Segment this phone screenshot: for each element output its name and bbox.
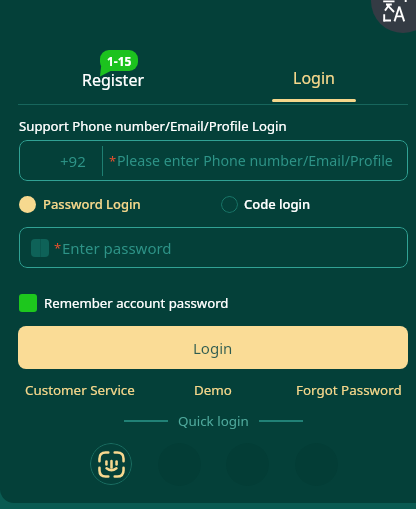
staticText: Remember account password <box>44 294 229 312</box>
staticText: Support Phone number/Email/Profile Login <box>19 117 287 135</box>
staticText: Please enter Phone number/Email/Profile <box>117 151 393 170</box>
staticText: Forgot Password <box>296 381 402 399</box>
staticText: Enter password <box>62 238 172 258</box>
button[interactable]: Face ID login <box>90 443 132 485</box>
button[interactable]: Customer Service <box>25 381 135 399</box>
button[interactable]: Login <box>18 326 408 369</box>
button[interactable]: Remember account password <box>19 294 229 312</box>
button[interactable]: * <box>19 227 408 268</box>
staticText: * <box>54 239 62 257</box>
staticText: Customer Service <box>25 381 135 399</box>
staticText: Login <box>293 67 335 89</box>
button[interactable]: Password Login <box>19 195 141 213</box>
staticText: Password Login <box>43 195 141 213</box>
button[interactable]: Code login <box>221 195 311 213</box>
button[interactable]: Login <box>247 60 381 104</box>
button[interactable]: Register <box>46 60 180 94</box>
staticText: Register <box>82 69 145 91</box>
button[interactable]: Language <box>371 0 416 33</box>
button[interactable]: Demo <box>194 381 232 399</box>
staticText: 1-15 <box>107 53 132 69</box>
button[interactable]: +92 <box>19 140 408 181</box>
staticText: Code login <box>244 195 311 213</box>
staticText: Quick login <box>178 412 249 430</box>
staticText: Demo <box>194 381 232 399</box>
button[interactable]: Forgot Password <box>296 381 402 399</box>
staticText: * <box>109 152 117 170</box>
staticText: Login <box>193 338 233 358</box>
staticText: +92 <box>60 151 86 171</box>
